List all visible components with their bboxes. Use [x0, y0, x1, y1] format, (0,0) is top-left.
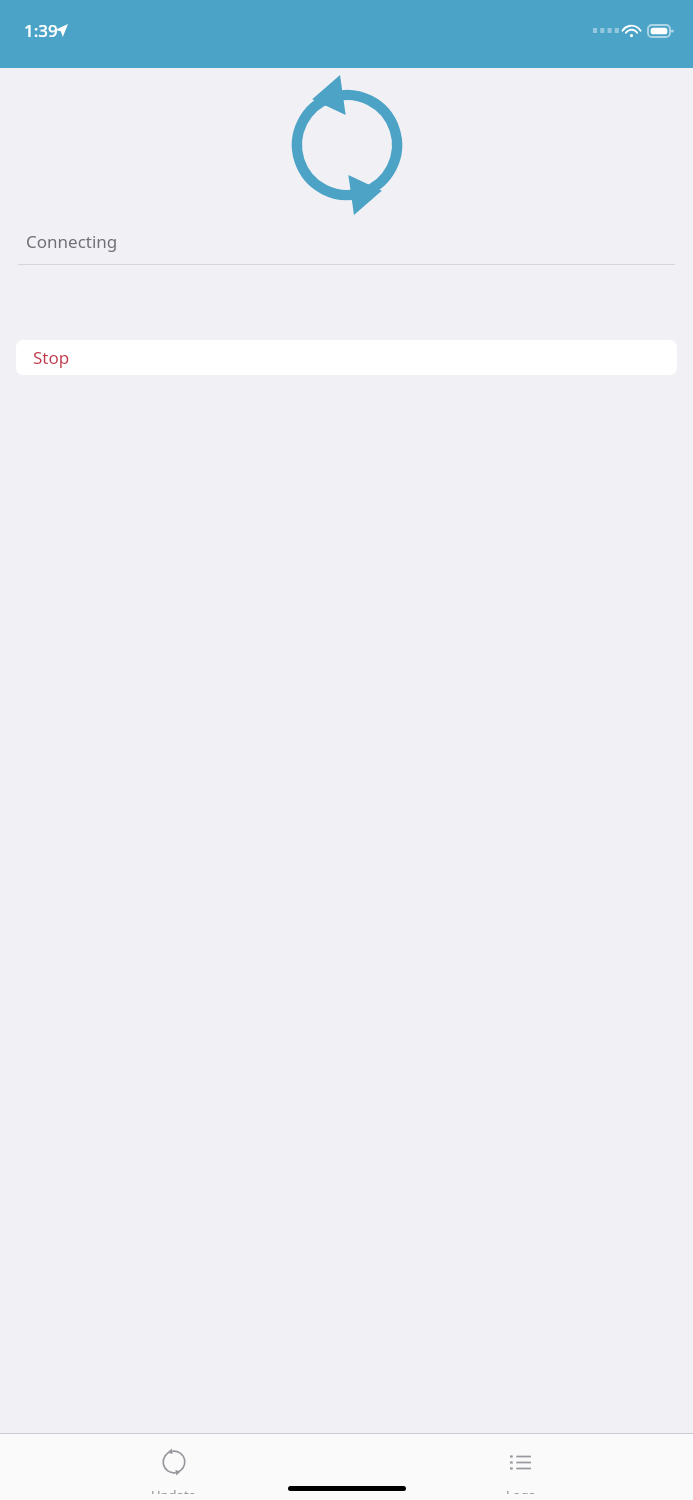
staticText: Connecting	[26, 230, 118, 253]
button[interactable]: Logs tab	[505, 1441, 535, 1500]
staticText: 1:39	[24, 19, 58, 42]
button[interactable]: Stop	[16, 340, 677, 375]
staticText: Update	[151, 1486, 196, 1494]
staticText: Logs	[506, 1486, 535, 1494]
staticText: Stop	[33, 346, 70, 369]
button[interactable]: Update tab	[151, 1441, 196, 1500]
